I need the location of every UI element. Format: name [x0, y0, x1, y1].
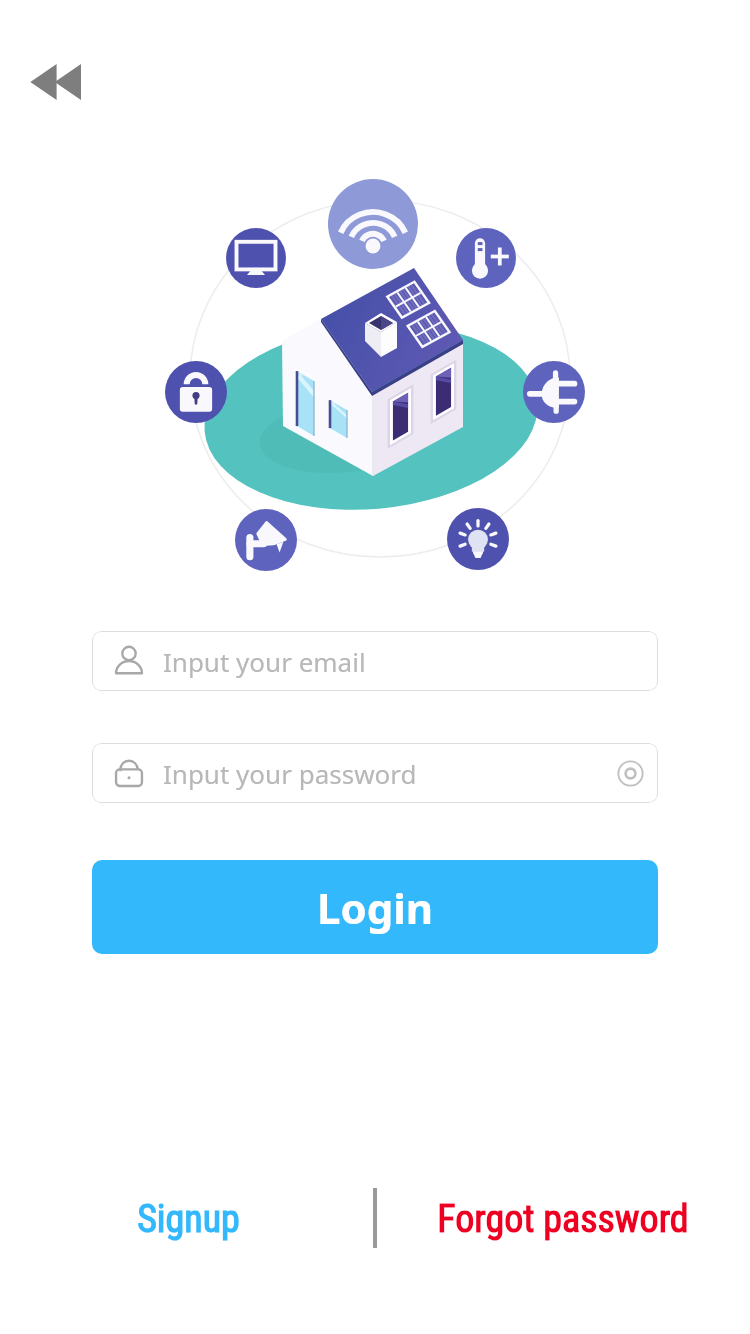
staticText: Login [317, 879, 434, 936]
button[interactable]: Login [92, 860, 658, 954]
button[interactable]: Signup [90, 1188, 286, 1250]
button[interactable]: Input your email [92, 631, 658, 691]
staticText: Forgot password [437, 1197, 689, 1242]
staticText: Input your email [163, 644, 366, 679]
button[interactable]: Forgot password [415, 1188, 711, 1250]
staticText: Input your password [163, 756, 417, 791]
button[interactable]: Show password [602, 745, 658, 801]
button[interactable]: Back [14, 50, 98, 114]
button[interactable]: Input your password [92, 743, 658, 803]
staticText: Signup [137, 1197, 240, 1242]
